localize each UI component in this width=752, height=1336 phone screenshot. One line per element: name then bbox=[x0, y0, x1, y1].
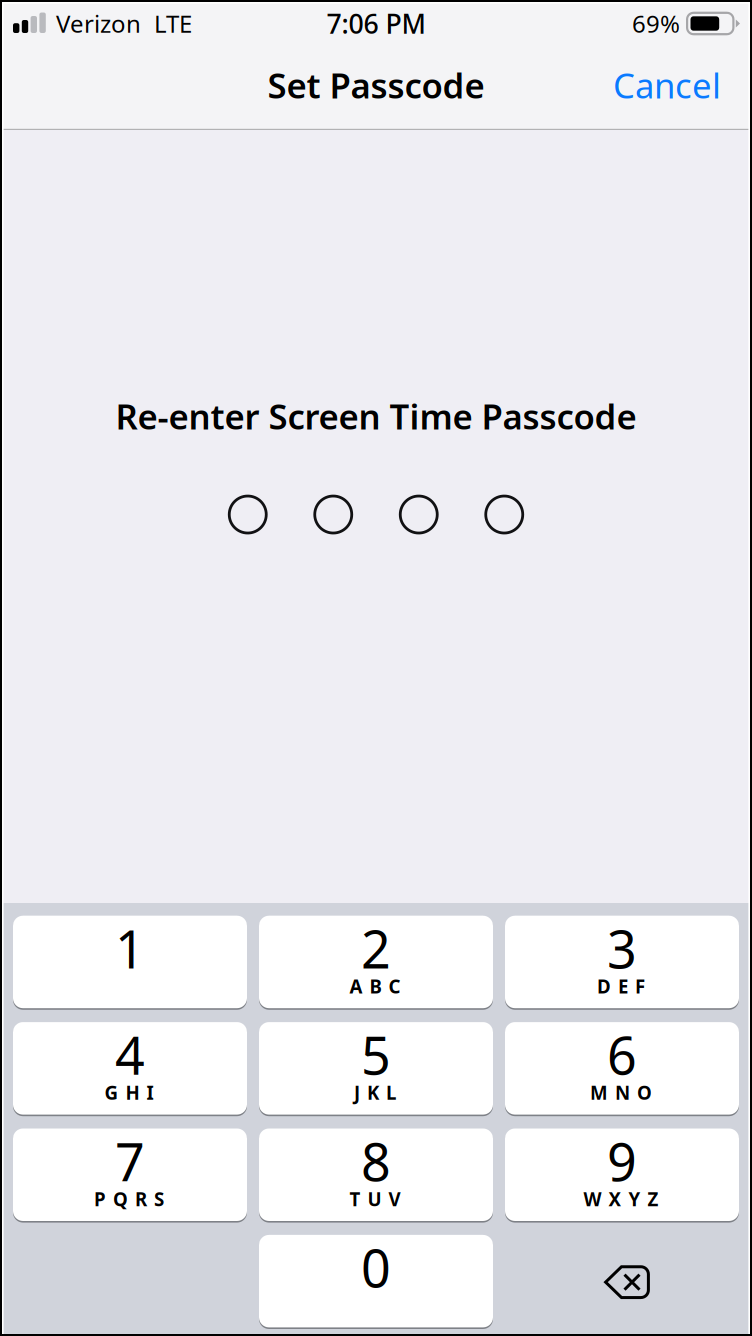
staticText: 6 bbox=[607, 1020, 637, 1089]
button[interactable]: 9 bbox=[505, 1128, 739, 1221]
staticText: 3 bbox=[607, 914, 637, 983]
button[interactable]: Delete bbox=[505, 1235, 739, 1327]
staticText: 4 bbox=[115, 1020, 145, 1089]
button[interactable]: 6 bbox=[505, 1022, 739, 1115]
staticText: Cancel bbox=[613, 62, 721, 108]
staticText: 2 bbox=[361, 914, 391, 983]
staticText: 8 bbox=[361, 1126, 391, 1196]
button[interactable]: 5 bbox=[259, 1022, 493, 1115]
staticText: DEF bbox=[597, 974, 645, 999]
staticText: WXYZ bbox=[583, 1187, 658, 1211]
staticText: 1 bbox=[115, 914, 145, 983]
button[interactable]: 3 bbox=[505, 916, 739, 1008]
staticText: 69% bbox=[632, 8, 680, 39]
button[interactable]: 1 bbox=[13, 916, 247, 1008]
button[interactable]: Cancel bbox=[584, 44, 750, 129]
staticText: 0 bbox=[361, 1233, 391, 1302]
staticText: 5 bbox=[361, 1020, 391, 1089]
staticText: Re-enter Screen Time Passcode bbox=[115, 393, 636, 439]
staticText: Set Passcode bbox=[267, 62, 484, 108]
button[interactable]: 7 bbox=[13, 1128, 247, 1221]
button[interactable]: 2 bbox=[259, 916, 493, 1008]
staticText: 9 bbox=[607, 1126, 637, 1196]
staticText: PQRS bbox=[94, 1187, 164, 1211]
button[interactable]: 4 bbox=[13, 1022, 247, 1115]
button[interactable]: 0 bbox=[259, 1235, 493, 1327]
staticText: Verizon bbox=[56, 8, 141, 39]
staticText: MNO bbox=[590, 1080, 652, 1105]
staticText: JKL bbox=[354, 1080, 396, 1105]
staticText: LTE bbox=[154, 8, 192, 39]
staticText: ABC bbox=[349, 974, 400, 999]
staticText: 7:06 PM bbox=[326, 6, 425, 41]
staticText: GHI bbox=[104, 1080, 153, 1105]
staticText: 7 bbox=[115, 1126, 145, 1196]
button[interactable]: 8 bbox=[259, 1128, 493, 1221]
staticText: TUV bbox=[349, 1187, 400, 1211]
